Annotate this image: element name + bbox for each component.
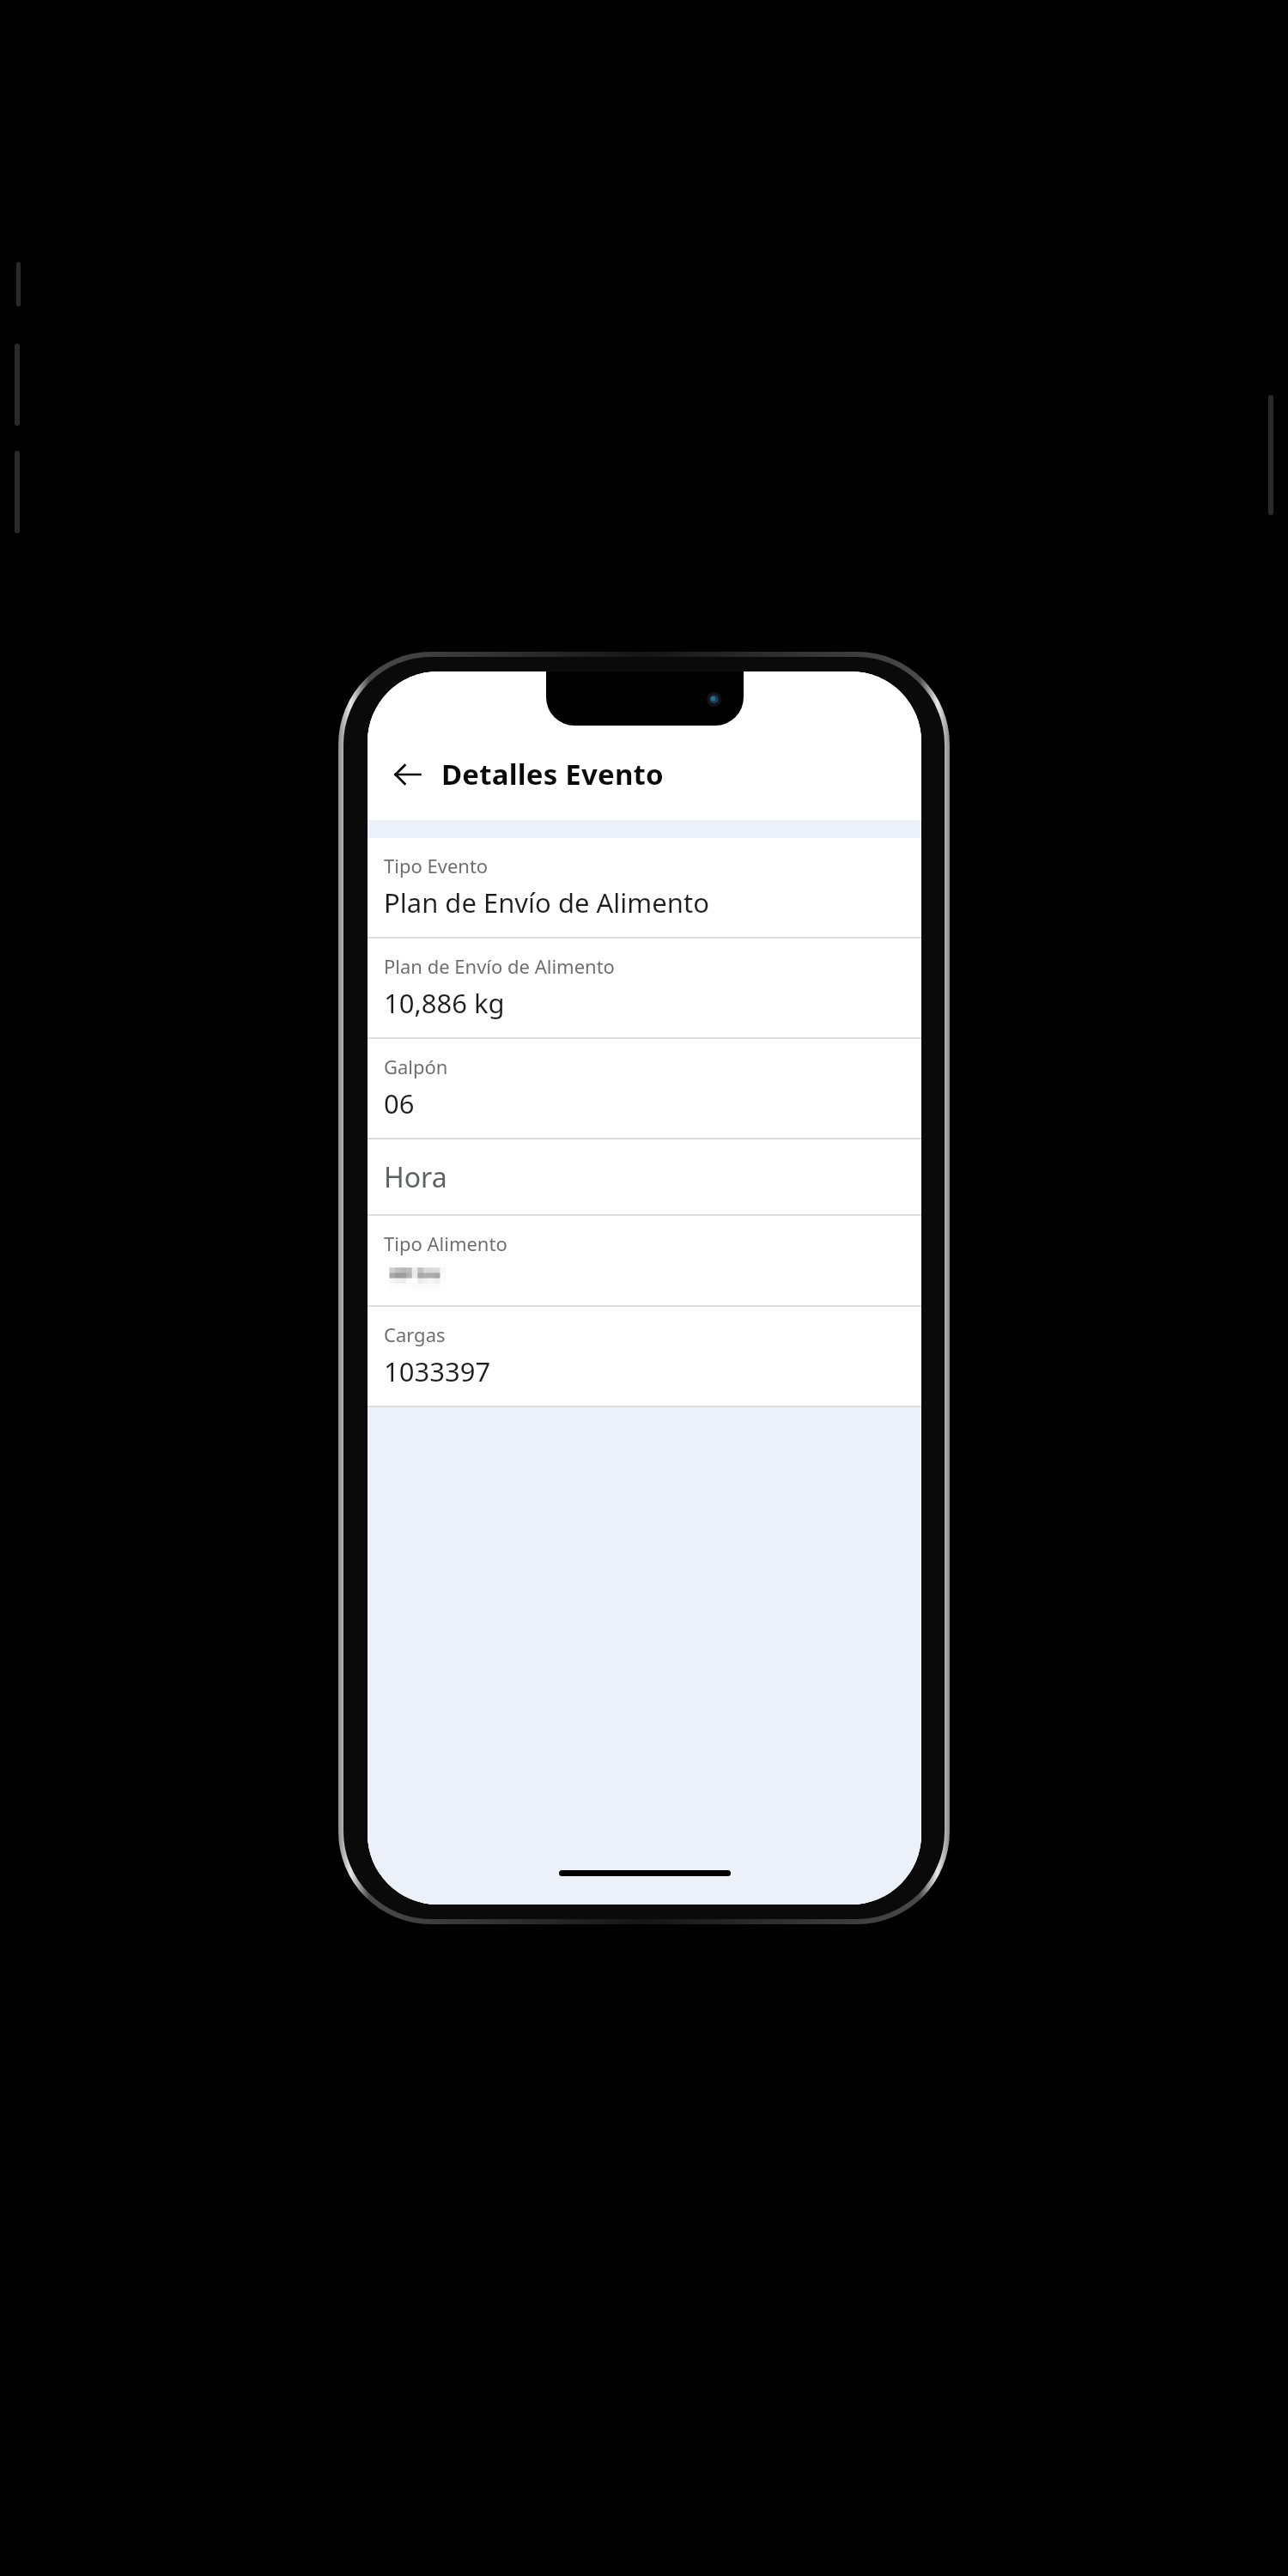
button[interactable]: Tipo Alimento	[368, 1216, 921, 1305]
staticText: Detalles Evento	[441, 755, 664, 793]
staticText: Plan de Envío de Alimento	[384, 953, 615, 979]
staticText: Cargas	[384, 1321, 446, 1347]
button[interactable]: Back	[383, 750, 433, 799]
staticText: Plan de Envío de Alimento	[384, 884, 709, 920]
staticText: 10,886 kg	[384, 985, 505, 1021]
button[interactable]: Cargas	[368, 1307, 921, 1406]
staticText: Galpón	[384, 1054, 448, 1079]
staticText: 06	[384, 1085, 415, 1121]
button[interactable]: Hora	[368, 1139, 921, 1214]
staticText: 1033397	[384, 1353, 491, 1389]
staticText: Tipo Alimento	[384, 1230, 507, 1256]
button[interactable]: Plan de Envío de Alimento	[368, 939, 921, 1037]
button[interactable]: Tipo Evento	[368, 838, 921, 937]
staticText: Hora	[384, 1158, 447, 1196]
button[interactable]: Galpón	[368, 1039, 921, 1138]
staticText: Tipo Evento	[384, 853, 489, 878]
